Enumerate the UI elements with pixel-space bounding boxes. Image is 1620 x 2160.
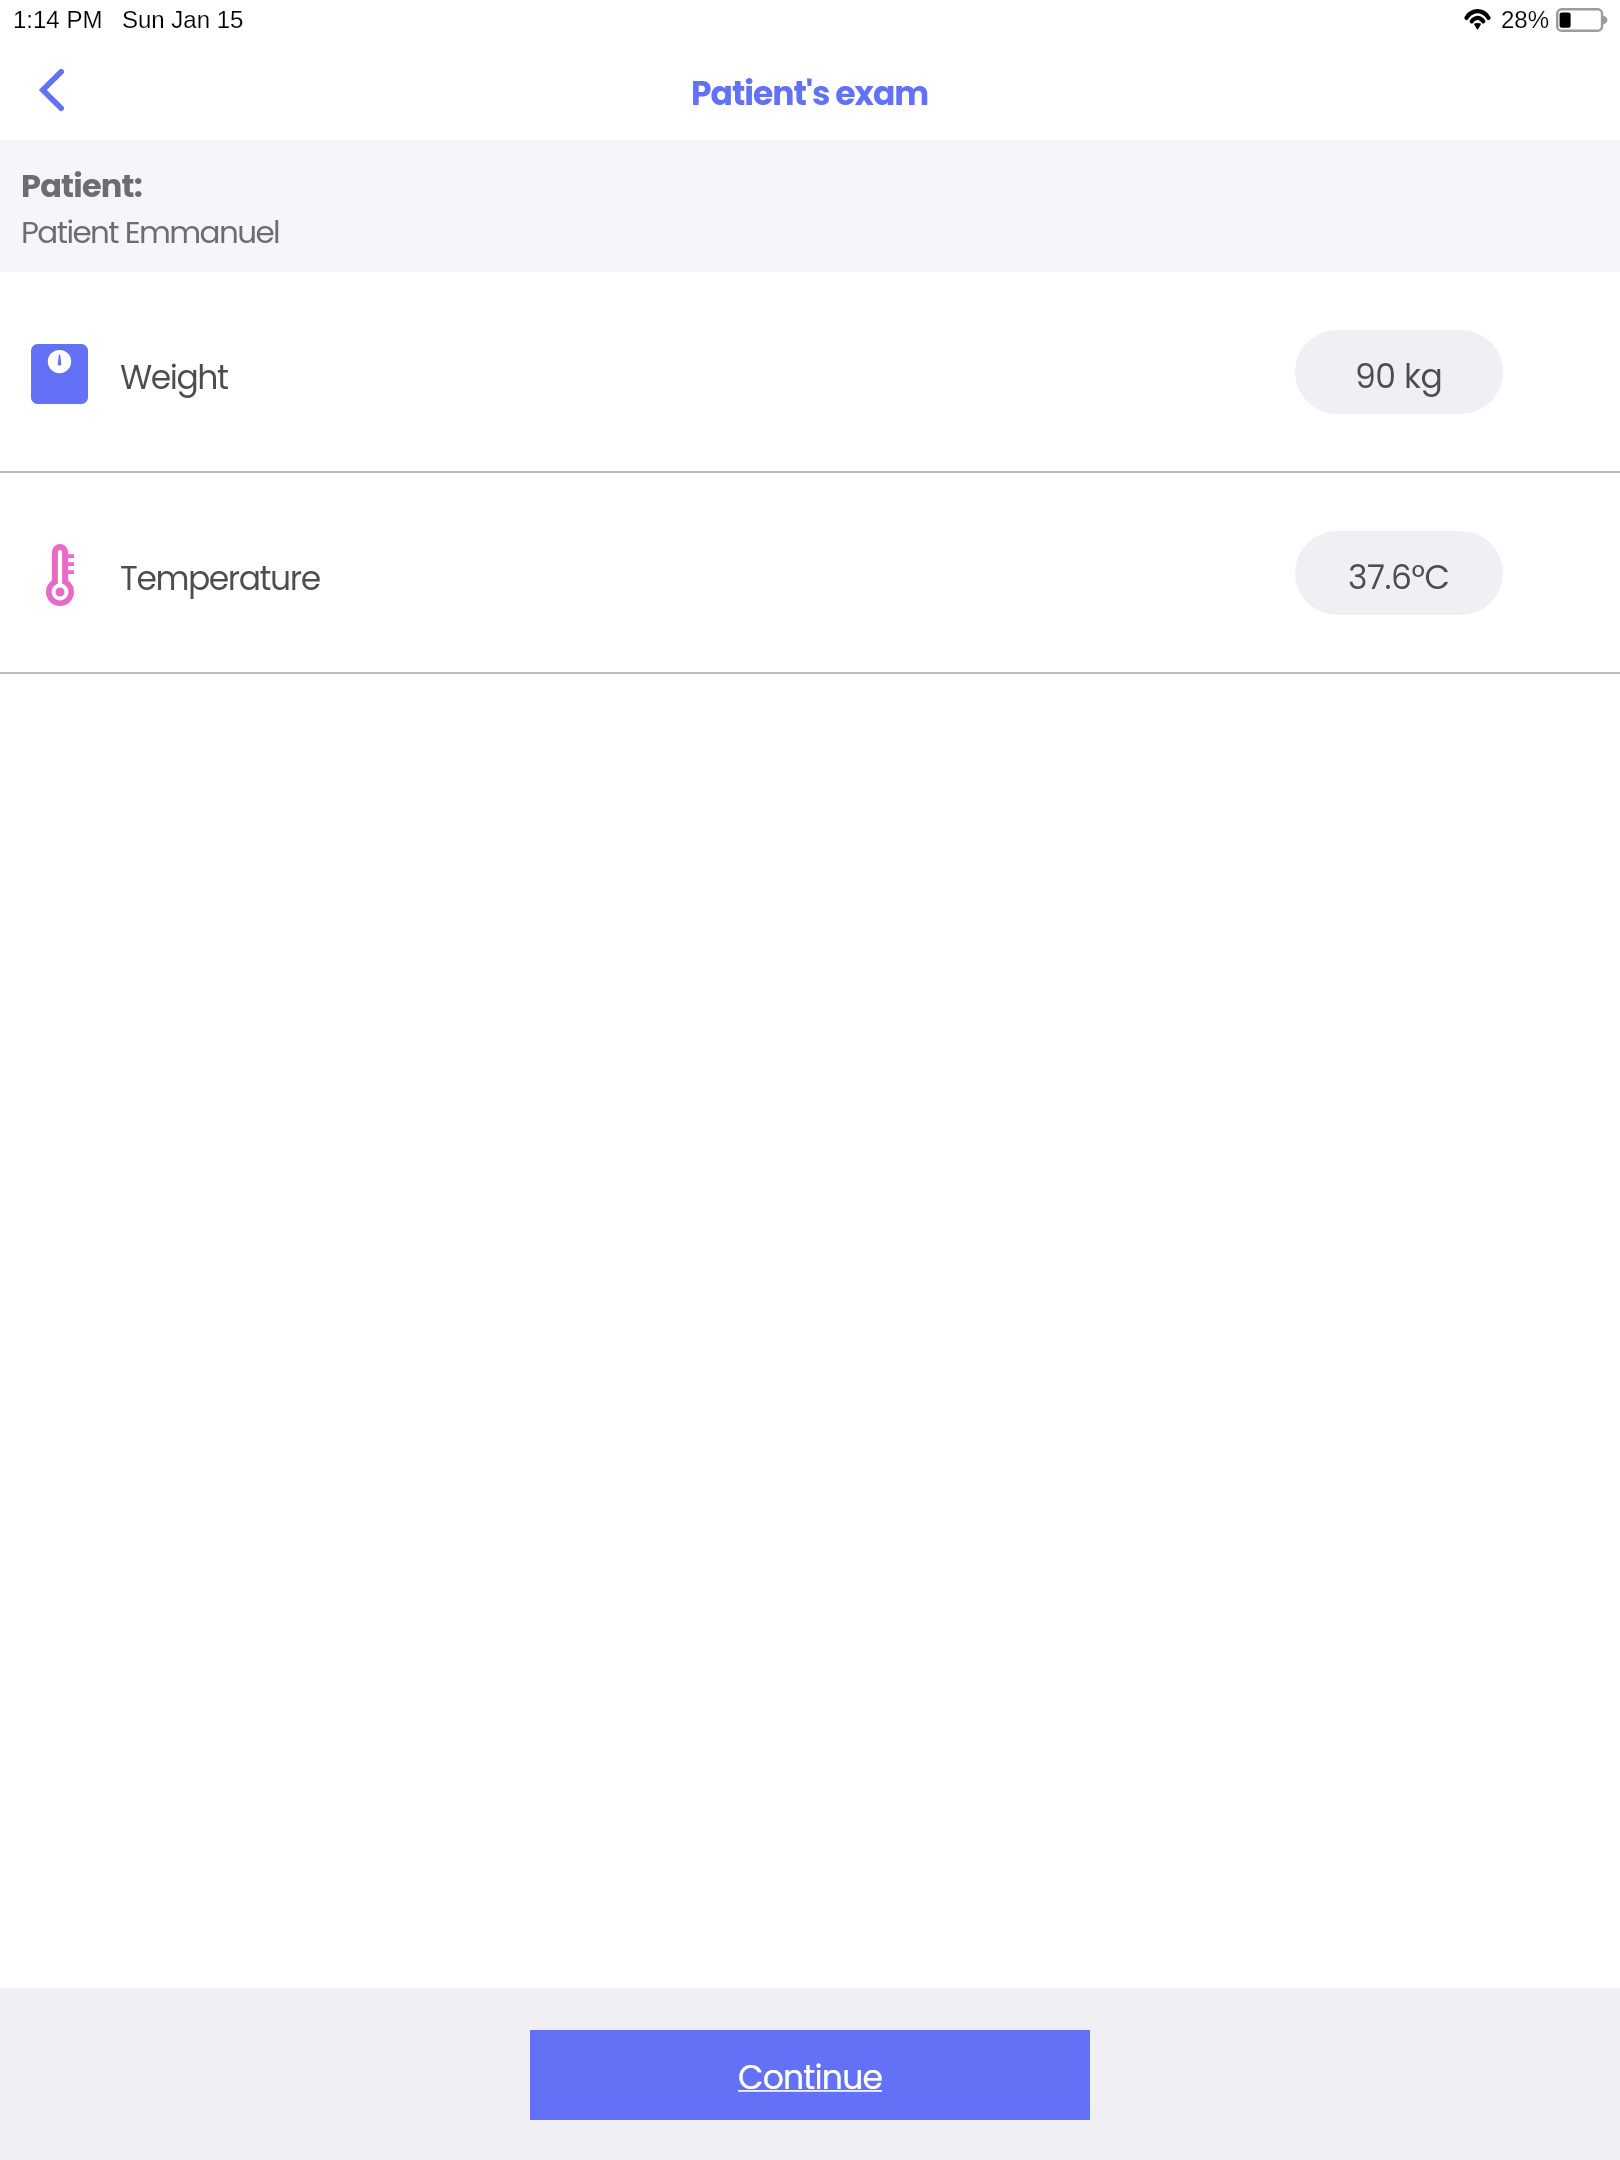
staticText: 1:14 PM xyxy=(13,6,103,33)
staticText: Continue xyxy=(738,2054,883,2100)
staticText: Patient: xyxy=(21,163,143,208)
staticText: 37.6°C xyxy=(1348,554,1450,600)
staticText: Patient's exam xyxy=(691,70,929,116)
staticText: Patient Emmanuel xyxy=(21,210,280,253)
staticText: Sun Jan 15 xyxy=(122,6,244,33)
staticText: 90 kg xyxy=(1355,353,1443,399)
staticText: 28% xyxy=(1501,6,1550,33)
button[interactable]: Weight xyxy=(0,272,1620,471)
button[interactable]: Temperature xyxy=(0,473,1620,672)
button[interactable]: Back xyxy=(15,53,89,127)
button[interactable]: Continue xyxy=(530,2030,1090,2120)
staticText: Weight xyxy=(120,354,228,400)
staticText: Temperature xyxy=(120,555,320,601)
button[interactable]: 90 kg xyxy=(1295,330,1503,414)
button[interactable]: 37.6°C xyxy=(1295,531,1503,615)
